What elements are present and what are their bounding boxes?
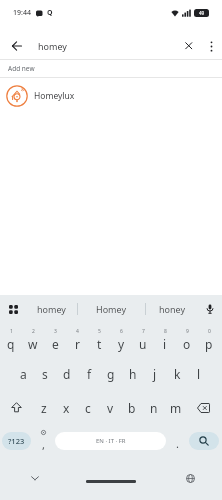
staticText: k <box>174 366 181 382</box>
button[interactable]: 2 <box>22 323 44 357</box>
staticText: u <box>139 336 147 352</box>
staticText: j <box>153 366 157 382</box>
button[interactable]: 7 <box>132 323 154 357</box>
staticText: 19:44 <box>13 8 31 18</box>
staticText: 7 <box>142 328 145 335</box>
button[interactable]: 8 <box>154 323 176 357</box>
button[interactable]: v <box>99 391 121 424</box>
button[interactable]: c <box>77 391 99 424</box>
staticText: ?123 <box>8 436 25 446</box>
staticText: 5 <box>98 328 101 335</box>
button[interactable]: k <box>166 357 188 391</box>
staticText: f <box>87 366 92 382</box>
button[interactable]: f <box>78 357 100 391</box>
button[interactable]: s <box>34 357 56 391</box>
button[interactable] <box>189 432 219 450</box>
button[interactable]: Homeylux <box>0 78 222 113</box>
staticText: r <box>75 336 80 352</box>
button[interactable]: a <box>12 357 34 391</box>
staticText: Q <box>47 8 53 18</box>
button[interactable]: g <box>100 357 122 391</box>
staticText: z <box>41 400 47 416</box>
button[interactable]: 4 <box>66 323 88 357</box>
staticText: l <box>197 366 201 382</box>
staticText: 49 <box>199 10 205 16</box>
staticText: h <box>129 366 137 382</box>
button[interactable] <box>8 37 26 55</box>
button[interactable] <box>27 470 43 486</box>
staticText: v <box>107 400 114 416</box>
staticText: 3 <box>54 328 57 335</box>
button[interactable] <box>0 296 26 322</box>
staticText: p <box>205 336 213 352</box>
button[interactable]: 5 <box>88 323 110 357</box>
staticText: s <box>42 366 48 382</box>
staticText: homey <box>38 40 67 52</box>
button[interactable]: ?123 <box>2 432 31 450</box>
staticText: g <box>107 366 115 382</box>
button[interactable]: h <box>122 357 144 391</box>
staticText: 9 <box>186 328 189 335</box>
staticText: , <box>42 437 45 452</box>
staticText: w <box>28 336 38 352</box>
staticText: Homeylux <box>34 90 75 102</box>
button[interactable] <box>198 297 222 321</box>
button[interactable]: 9 <box>176 323 198 357</box>
staticText: Homey <box>96 303 127 315</box>
button[interactable]: x <box>55 391 77 424</box>
button[interactable]: homey <box>26 295 77 323</box>
button[interactable]: 0 <box>198 323 220 357</box>
button[interactable]: m <box>165 391 187 424</box>
button[interactable]: honey <box>146 295 198 323</box>
staticText: d <box>63 366 71 382</box>
staticText: Add new <box>8 64 35 73</box>
staticText: . <box>176 436 179 451</box>
staticText: EN · IT · FR <box>96 437 126 445</box>
button[interactable] <box>0 391 33 424</box>
staticText: n <box>150 400 158 416</box>
staticText: 4 <box>76 328 79 335</box>
staticText: i <box>163 336 167 352</box>
button[interactable]: j <box>144 357 166 391</box>
staticText: m <box>170 400 182 416</box>
button[interactable] <box>182 470 198 486</box>
staticText: 8 <box>164 328 167 335</box>
button[interactable]: . <box>166 424 189 458</box>
button[interactable]: 1 <box>0 323 22 357</box>
button[interactable]: 3 <box>44 323 66 357</box>
staticText: 0 <box>208 328 211 335</box>
staticText: 6 <box>120 328 123 335</box>
button[interactable]: EN · IT · FR <box>55 432 166 450</box>
staticText: homey <box>37 303 66 315</box>
staticText: o <box>183 336 191 352</box>
staticText: 2 <box>32 328 35 335</box>
staticText: e <box>52 336 59 352</box>
staticText: x <box>63 400 70 416</box>
button[interactable]: d <box>56 357 78 391</box>
button[interactable]: , <box>31 424 55 458</box>
button[interactable]: Homey <box>78 295 145 323</box>
staticText: a <box>20 366 27 382</box>
staticText: 1 <box>10 328 13 335</box>
button[interactable] <box>187 391 220 424</box>
button[interactable] <box>86 480 136 483</box>
button[interactable]: l <box>188 357 210 391</box>
staticText: b <box>128 400 136 416</box>
button[interactable]: 6 <box>110 323 132 357</box>
button[interactable] <box>180 37 198 55</box>
button[interactable]: n <box>143 391 165 424</box>
staticText: y <box>118 336 125 352</box>
staticText: honey <box>159 303 186 315</box>
staticText: t <box>97 336 102 352</box>
staticText: c <box>85 400 91 416</box>
button[interactable]: z <box>33 391 55 424</box>
staticText: q <box>7 336 15 352</box>
button[interactable] <box>204 39 218 53</box>
button[interactable]: b <box>121 391 143 424</box>
